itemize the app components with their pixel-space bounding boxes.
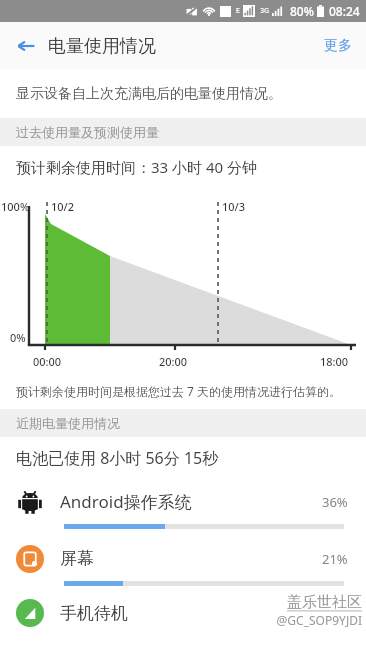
staticText: 100% xyxy=(1,199,30,214)
staticText: 预计剩余使用时间是根据您过去 7 天的使用情况进行估算的。 xyxy=(16,383,342,399)
staticText: 0% xyxy=(10,330,26,345)
staticText: 08:24 xyxy=(329,3,360,19)
staticText: 过去使用量及预测使用量 xyxy=(16,124,159,140)
staticText: 20:00 xyxy=(159,354,188,369)
staticText: 3G xyxy=(260,6,270,16)
staticText: Android操作系统 xyxy=(60,490,322,513)
staticText: 21% xyxy=(322,550,348,568)
staticText: 18:00 xyxy=(320,354,349,369)
staticText: 10/3 xyxy=(222,199,246,214)
staticText: 00:00 xyxy=(33,354,62,369)
staticText: 盖乐世社区 xyxy=(287,593,362,612)
button[interactable]: 屏幕 xyxy=(0,536,366,593)
staticText: 36% xyxy=(322,493,348,511)
staticText: 显示设备自上次充满电后的电量使用情况。 xyxy=(16,85,282,103)
staticText: 屏幕 xyxy=(60,548,322,569)
button[interactable]: Android操作系统 xyxy=(0,479,366,536)
staticText: 预计剩余使用时间：33 小时 40 分钟 xyxy=(16,157,258,177)
staticText: 电池已使用 8小时 56分 15秒 xyxy=(16,447,219,469)
staticText: 手机待机 xyxy=(60,603,128,624)
staticText: 电量使用情况 xyxy=(48,35,156,58)
staticText: @GC_SOP9YJDI xyxy=(276,612,362,628)
staticText: 近期电量使用情况 xyxy=(16,415,120,431)
staticText: 80% xyxy=(290,3,314,19)
staticText: 10/2 xyxy=(51,199,75,214)
staticText: E xyxy=(236,6,240,16)
button[interactable]: Back xyxy=(8,28,44,64)
staticText: 更多 xyxy=(324,37,352,55)
button[interactable]: 更多 xyxy=(310,27,366,65)
